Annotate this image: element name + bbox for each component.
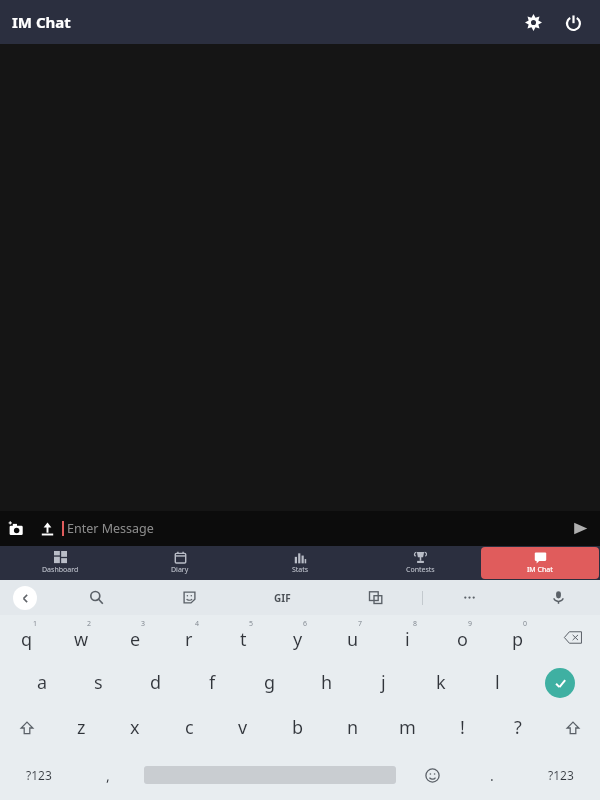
button[interactable]: 8 (380, 615, 435, 660)
staticText: c (185, 715, 194, 740)
button[interactable]: . (462, 750, 522, 800)
button[interactable]: Contests (360, 546, 480, 580)
staticText: 3 (141, 619, 146, 629)
staticText: i (405, 627, 410, 652)
staticText: a (37, 670, 48, 695)
button[interactable]: h (298, 660, 355, 705)
staticText: z (77, 715, 86, 740)
staticText: ! (460, 715, 465, 740)
staticText: ? (514, 715, 522, 740)
button[interactable]: d (127, 660, 184, 705)
button[interactable]: s (70, 660, 127, 705)
staticText: m (399, 715, 416, 740)
staticText: r (185, 627, 193, 652)
staticText: v (238, 715, 248, 740)
button[interactable]: Voice input (516, 580, 600, 615)
staticText: Contests (406, 565, 435, 575)
staticText: 9 (468, 619, 473, 629)
button[interactable]: z (54, 705, 108, 750)
button[interactable]: Emoji (402, 750, 462, 800)
button[interactable]: l (469, 660, 526, 705)
staticText: . (490, 766, 494, 785)
button[interactable]: 7 (325, 615, 380, 660)
staticText: e (130, 627, 141, 652)
staticText: ?123 (26, 767, 52, 783)
staticText: Enter Message (67, 520, 154, 537)
button[interactable]: Take photo (0, 511, 32, 546)
staticText: 5 (249, 619, 254, 629)
button[interactable]: ?123 (522, 750, 600, 800)
button[interactable]: Stats (240, 546, 360, 580)
button[interactable]: ! (435, 705, 490, 750)
staticText: s (94, 670, 103, 695)
staticText: f (209, 670, 216, 695)
staticText: 7 (358, 619, 363, 629)
button[interactable]: c (162, 705, 216, 750)
button[interactable]: 1 (0, 615, 54, 660)
button[interactable]: n (325, 705, 380, 750)
button[interactable]: k (412, 660, 469, 705)
button[interactable]: Back (0, 580, 50, 615)
staticText: GIF (274, 591, 291, 605)
staticText: u (347, 627, 359, 652)
button[interactable]: Translate (329, 580, 422, 615)
button[interactable]: Stickers (143, 580, 236, 615)
button[interactable]: 4 (162, 615, 216, 660)
staticText: w (74, 627, 89, 652)
button[interactable]: g (241, 660, 298, 705)
button[interactable]: a (14, 660, 70, 705)
button[interactable]: Power (556, 5, 590, 39)
button[interactable]: Search (50, 580, 143, 615)
staticText: y (293, 627, 303, 652)
button[interactable]: Upload (32, 511, 62, 546)
button[interactable]: Shift (545, 705, 600, 750)
button[interactable]: f (184, 660, 241, 705)
button[interactable]: v (216, 705, 270, 750)
staticText: n (347, 715, 359, 740)
button[interactable]: GIF (236, 580, 329, 615)
staticText: k (436, 670, 446, 695)
staticText: 2 (87, 619, 92, 629)
button[interactable]: Dashboard (0, 546, 120, 580)
staticText: Dashboard (42, 565, 79, 575)
button[interactable]: Enter Message (62, 511, 560, 546)
button[interactable]: ?123 (0, 750, 78, 800)
button[interactable]: m (380, 705, 435, 750)
button[interactable]: Send (560, 511, 600, 546)
staticText: , (106, 766, 110, 785)
button[interactable]: b (270, 705, 325, 750)
button[interactable]: 5 (216, 615, 270, 660)
staticText: l (495, 670, 500, 695)
button[interactable]: 9 (435, 615, 490, 660)
button[interactable]: ? (490, 705, 545, 750)
staticText: p (512, 627, 524, 652)
staticText: 0 (523, 619, 528, 629)
staticText: 1 (33, 619, 38, 629)
button[interactable]: 0 (490, 615, 545, 660)
staticText: g (264, 670, 276, 695)
button[interactable]: Backspace (545, 615, 600, 660)
button[interactable]: IM Chat (481, 547, 599, 579)
staticText: 4 (195, 619, 200, 629)
button[interactable]: j (355, 660, 412, 705)
staticText: 6 (303, 619, 308, 629)
button[interactable]: More options (423, 580, 516, 615)
staticText: x (130, 715, 140, 740)
staticText: t (240, 627, 247, 652)
button[interactable]: x (108, 705, 162, 750)
button[interactable]: Diary (120, 546, 240, 580)
staticText: q (21, 627, 33, 652)
staticText: j (381, 670, 386, 695)
staticText: IM Chat (527, 565, 553, 575)
button[interactable]: Settings (516, 5, 550, 39)
staticText: h (321, 670, 333, 695)
button[interactable]: 2 (54, 615, 108, 660)
button[interactable]: 3 (108, 615, 162, 660)
staticText: b (292, 715, 304, 740)
button[interactable]: Shift (0, 705, 54, 750)
button[interactable]: Enter (526, 660, 594, 705)
staticText: Diary (171, 565, 189, 575)
button[interactable]: 6 (270, 615, 325, 660)
button[interactable]: , (78, 750, 138, 800)
